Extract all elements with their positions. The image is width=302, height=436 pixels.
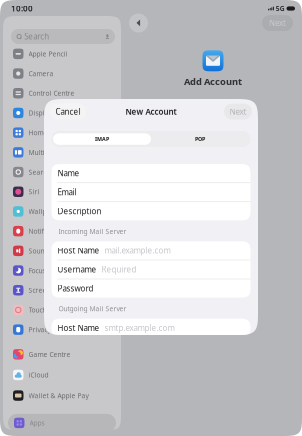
button[interactable]: Apps [8,414,116,432]
button[interactable]: Privacy & Secur [3,320,121,339]
button[interactable]: Display & Bright [3,103,121,123]
staticText: Description [57,206,101,216]
staticText: Add Account [184,75,242,88]
button[interactable]: Camera [3,64,121,83]
button[interactable]: Touch ID & Pass [3,300,121,320]
button[interactable]: Search [3,162,121,182]
button[interactable]: Next [262,15,293,31]
button[interactable]: Game Centre [3,344,121,364]
staticText: Game Centre [28,350,70,359]
staticText: Cancel [55,106,80,117]
staticText: New Account [125,106,176,117]
staticText: Siri [28,187,39,196]
staticText: POP [195,135,205,143]
staticText: Apple Pencil [28,49,67,58]
staticText: mail.example.com [104,245,170,256]
staticText: Email [57,187,76,197]
staticText: Multitasking & G [28,148,81,157]
staticText: Required [101,264,136,275]
staticText: Wallet & Apple Pay [28,391,88,400]
staticText: smtp.example.com [104,322,174,333]
button[interactable]: Description [51,202,250,220]
staticText: 5G [276,4,285,13]
staticText: Search [24,31,49,42]
button[interactable]: Notifications [3,221,121,241]
staticText: Outgoing Mail Server [58,304,126,313]
button[interactable]: Host Name [51,319,250,337]
button[interactable]: Home Screen & A [3,123,121,142]
button[interactable]: iCloud [3,365,121,385]
button[interactable]: Back [129,13,148,32]
button[interactable]: Multitasking & G [3,142,121,162]
staticText: Next [229,106,246,117]
button[interactable]: Wallpaper [3,202,121,221]
button[interactable]: POP [151,133,249,145]
button[interactable]: Apple Pencil [3,44,121,64]
button[interactable]: Next [224,103,252,119]
staticText: Display & Bright [28,108,79,117]
button[interactable]: Siri [3,182,121,202]
staticText: 10:00 [11,3,33,14]
button[interactable]: Wallet & Apple Pay [3,386,121,405]
staticText: Notifications [28,227,67,236]
button[interactable]: Focus [3,261,121,280]
staticText: Focus [28,266,45,275]
staticText: Touch ID & Pass [28,305,78,314]
button[interactable]: Cancel [50,103,86,119]
staticText: Camera [28,69,53,78]
staticText: Password [57,283,93,294]
button[interactable]: Password [51,279,250,298]
button[interactable]: Host Name [51,241,250,260]
staticText: IMAP [95,135,109,143]
staticText: Name [57,168,79,178]
button[interactable]: Sounds [3,241,121,261]
staticText: Sounds [28,246,51,255]
button[interactable]: Screen Time [3,280,121,300]
staticText: Privacy & Secur [28,325,77,334]
staticText: Home Screen & A [28,128,84,137]
button[interactable]: Email [51,183,250,201]
staticText: Search [28,168,50,176]
button[interactable]: Search [11,29,115,44]
staticText: Host Name [57,245,99,256]
staticText: Incoming Mail Server [58,227,126,236]
staticText: iCloud [28,370,48,379]
staticText: Next [269,18,286,28]
button[interactable]: IMAP [53,133,151,145]
staticText: Host Name [57,322,99,333]
staticText: Apps [29,418,44,427]
staticText: Screen Time [28,286,68,295]
button[interactable]: Name [51,164,250,182]
staticText: Control Centre [28,89,74,98]
staticText: Username [57,264,96,275]
staticText: Wallpaper [28,207,61,216]
button[interactable]: Username [51,260,250,279]
button[interactable]: Control Centre [3,83,121,103]
